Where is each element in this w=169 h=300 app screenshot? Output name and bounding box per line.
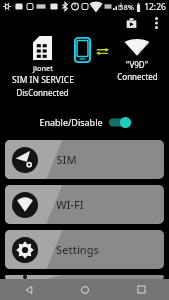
button[interactable]: SIM [5,140,164,179]
staticText: Settings [56,242,99,257]
staticText: SIM [56,152,77,167]
staticText: SIM IN SERVICE [12,74,74,86]
button[interactable]: Home [57,279,113,300]
staticText: 58% [119,2,134,12]
button[interactable]: Back [0,279,57,300]
staticText: jionet [33,63,53,73]
staticText: "V9D" [126,59,148,70]
button[interactable] [5,275,164,279]
staticText: 12:26 [144,1,166,13]
staticText: Connected [117,71,158,82]
button[interactable]: Enable/Disable [35,114,135,130]
button[interactable]: More options [147,14,165,32]
button[interactable]: WI-FI [5,185,164,224]
button[interactable]: Settings [5,230,164,269]
button[interactable]: Capture [121,13,141,33]
button[interactable]: Recent apps [113,279,169,300]
staticText: WI-FI [56,197,84,212]
staticText: DisConnected [16,87,69,98]
staticText: Enable/Disable [39,116,103,128]
